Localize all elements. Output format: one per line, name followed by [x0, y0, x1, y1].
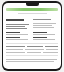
button[interactable] [6, 37, 58, 40]
button[interactable]: Document title [6, 8, 58, 11]
button[interactable] [6, 32, 58, 35]
other: Notch [26, 3, 39, 6]
